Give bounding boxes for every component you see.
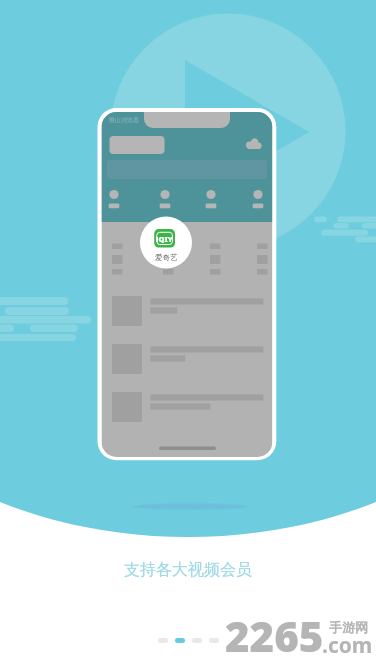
staticText: 支持各大视频会员 xyxy=(124,560,252,580)
button[interactable]: Page 2 xyxy=(175,638,185,643)
staticText: 爱奇艺 xyxy=(155,253,178,263)
button[interactable]: Page 4 xyxy=(209,638,219,643)
staticText: 猴山浏览器 xyxy=(109,116,139,124)
button[interactable]: Page 3 xyxy=(192,638,202,643)
staticText: .com xyxy=(322,631,373,660)
staticText: 2265 xyxy=(225,607,324,664)
button[interactable]: Page 1 xyxy=(158,638,168,643)
staticText: 手游网 xyxy=(329,619,368,635)
staticText: iQIY xyxy=(156,234,173,244)
